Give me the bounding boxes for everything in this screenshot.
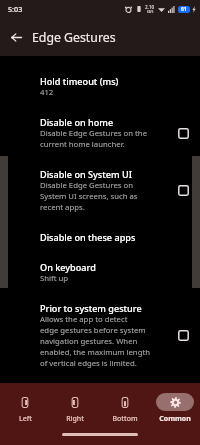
button[interactable]: Toggle checkbox [173, 180, 194, 201]
staticText: Disable on System UI [40, 168, 132, 180]
staticText: Allows the app to detect edge gestures b… [40, 314, 150, 369]
button[interactable]: Left [0, 383, 50, 423]
staticText: 5:03 [8, 4, 23, 14]
button[interactable]: Back [6, 27, 26, 47]
staticText: Common [159, 414, 191, 423]
staticText: Prior to system gesture [40, 302, 142, 314]
staticText: Hold timeout (ms) [40, 75, 119, 87]
staticText: Disable Edge Gestures on the current hom… [40, 128, 148, 150]
staticText: Disable Edge Gestures on System UI scree… [40, 180, 138, 213]
staticText: Disable on these apps [40, 231, 136, 243]
staticText: 61 [181, 6, 187, 13]
button[interactable]: On keyboard [0, 252, 200, 293]
button[interactable]: Toggle checkbox [173, 325, 194, 346]
button[interactable]: Disable on these apps [0, 222, 200, 252]
button[interactable]: Common [150, 383, 200, 423]
staticText: On keyboard [40, 261, 96, 273]
button[interactable]: Bottom [100, 383, 150, 423]
button[interactable]: Right [50, 383, 100, 423]
staticText: Right [66, 414, 84, 423]
button[interactable]: Prior to system gesture [0, 293, 200, 378]
staticText: Bottom [112, 414, 138, 423]
staticText: Shift up [40, 273, 69, 284]
staticText: KB/S [147, 10, 154, 14]
staticText: Left [19, 414, 32, 423]
button[interactable]: Hold timeout (ms) [0, 66, 200, 107]
button[interactable]: Disable on System UI [0, 159, 200, 222]
button[interactable]: Disable on home [0, 107, 200, 159]
button[interactable]: Toggle checkbox [173, 123, 194, 144]
staticText: 412 [40, 87, 54, 98]
staticText: Disable on home [40, 116, 114, 128]
staticText: 2.10 [145, 4, 155, 10]
staticText: Edge Gestures [32, 29, 116, 46]
